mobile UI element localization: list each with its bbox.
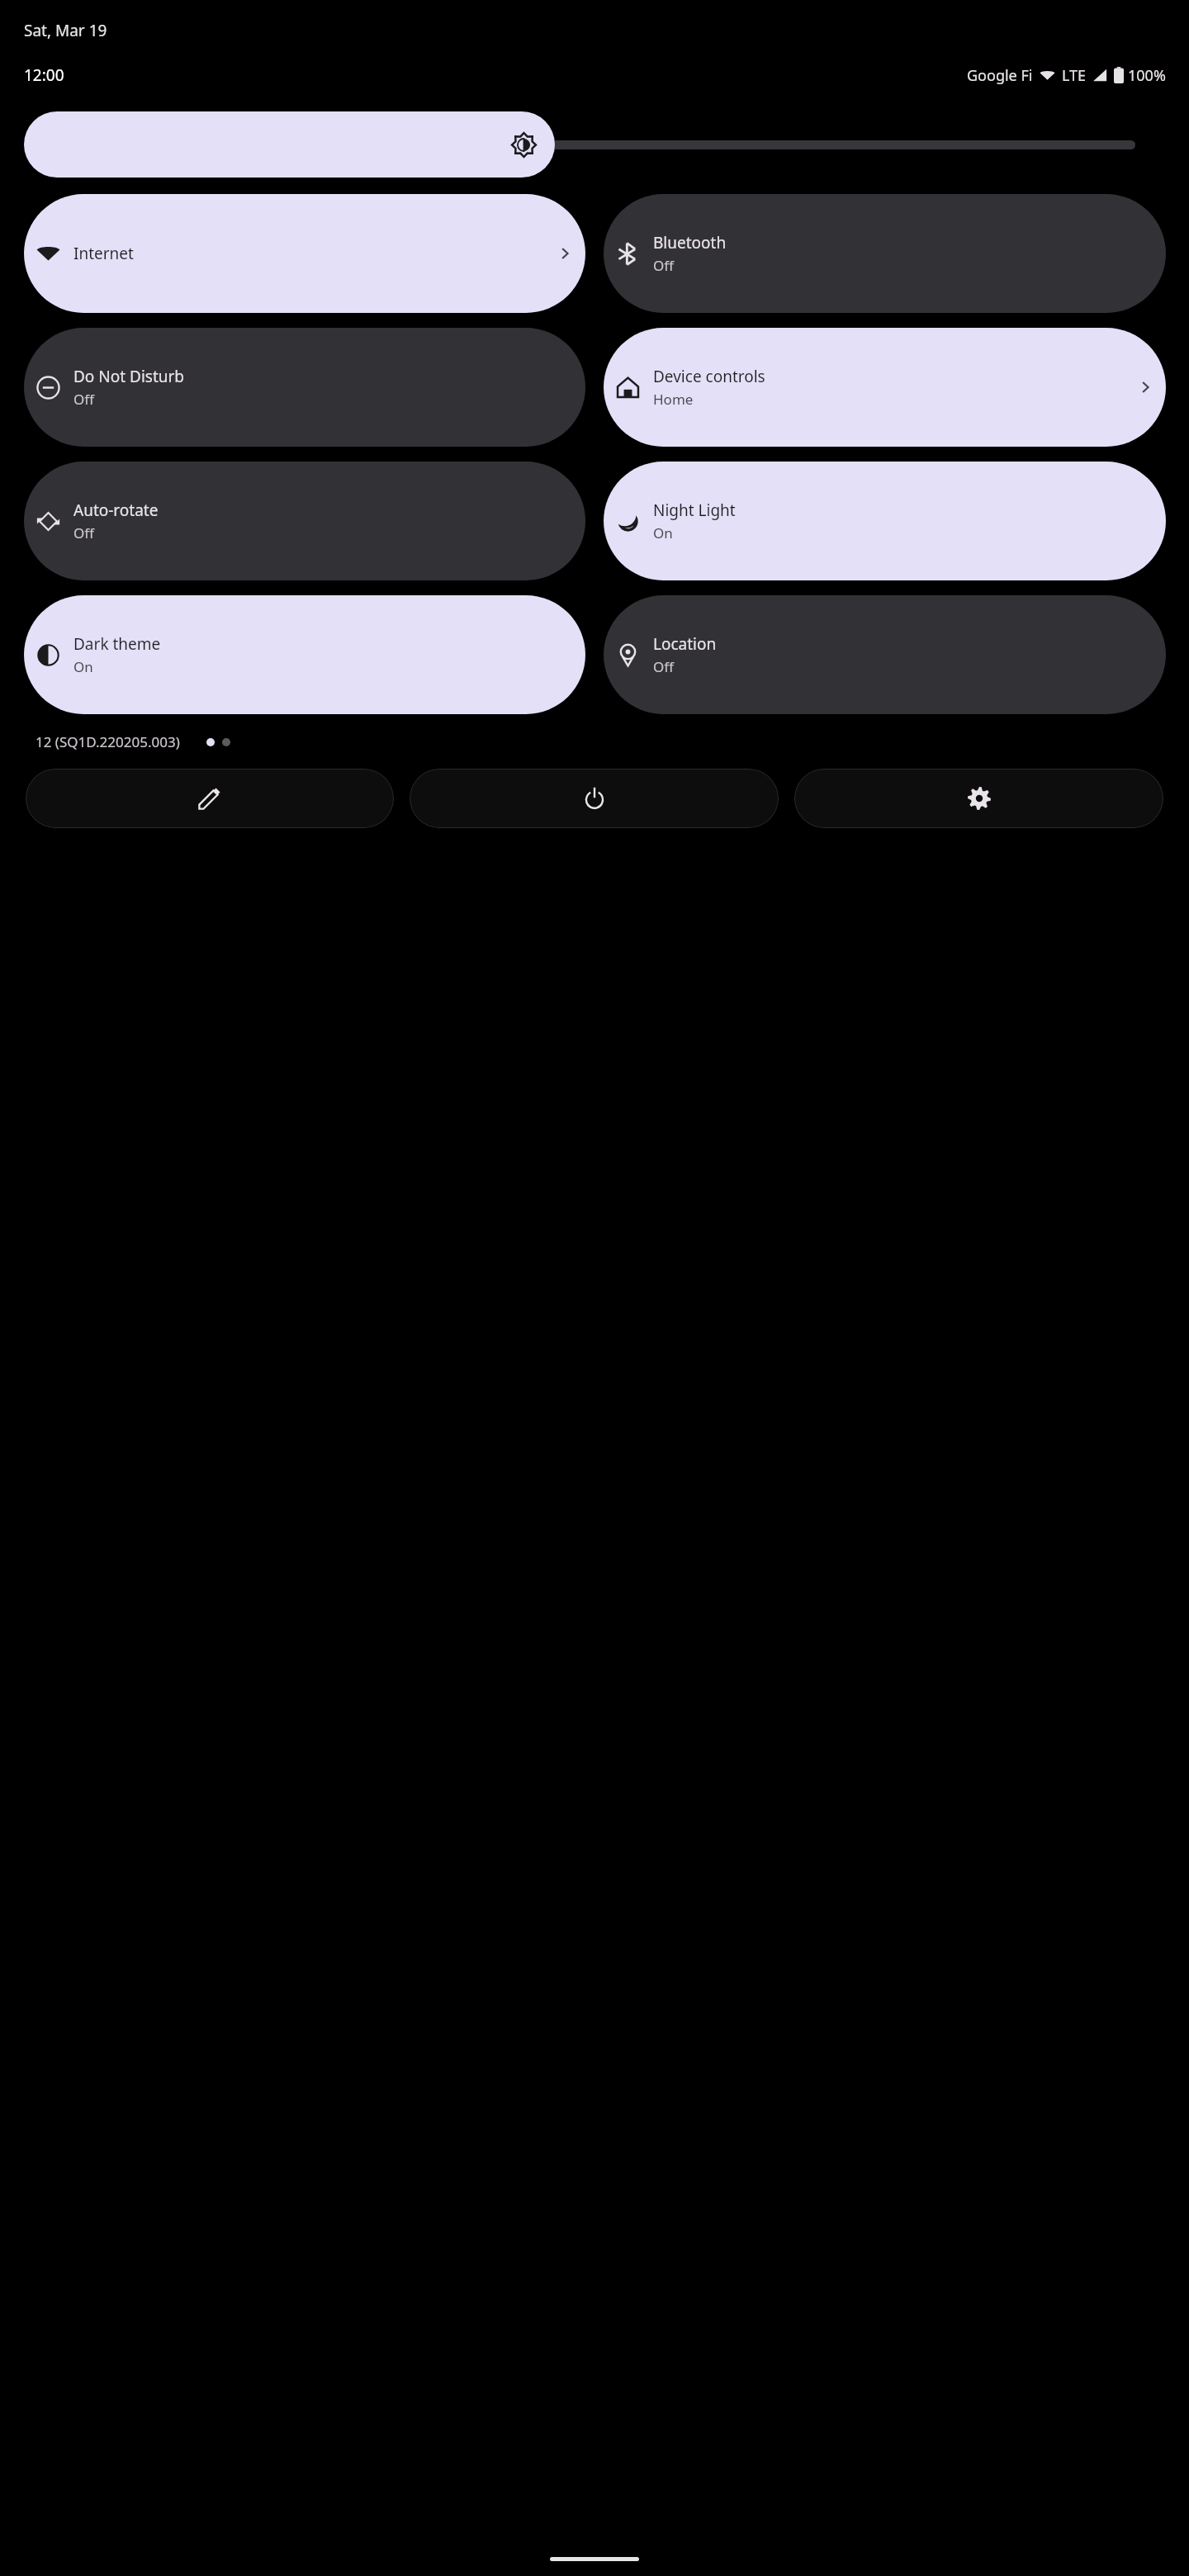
button[interactable]: Device controls (604, 328, 1166, 447)
button[interactable]: Internet (24, 194, 585, 313)
button[interactable]: Settings (794, 769, 1163, 828)
staticText: On (653, 523, 673, 542)
staticText: Google Fi (967, 65, 1033, 86)
staticText: Location (653, 633, 717, 655)
staticText: 12 (SQ1D.220205.003) (36, 732, 180, 751)
staticText: Device controls (653, 366, 765, 387)
button[interactable]: Bluetooth (604, 194, 1166, 313)
staticText: Auto-rotate (73, 500, 159, 521)
button[interactable]: Dark theme (24, 595, 585, 714)
staticText: Do Not Disturb (73, 366, 185, 387)
staticText: Home (653, 390, 694, 409)
staticText: Bluetooth (653, 232, 727, 253)
staticText: On (73, 657, 93, 676)
button[interactable]: Edit tiles (26, 769, 394, 828)
staticText: Sat, Mar 19 (24, 20, 107, 41)
staticText: LTE (1062, 65, 1087, 86)
staticText: Internet (73, 243, 134, 264)
button[interactable]: Brightness (24, 111, 1135, 178)
staticText: Off (73, 390, 94, 409)
staticText: Dark theme (73, 633, 161, 655)
button[interactable]: Night Light (604, 462, 1166, 580)
staticText: 100% (1128, 65, 1166, 86)
staticText: Off (73, 523, 94, 542)
button[interactable]: Auto-rotate (24, 462, 585, 580)
staticText: Off (653, 657, 674, 676)
button[interactable]: Do Not Disturb (24, 328, 585, 447)
button[interactable]: Location (604, 595, 1166, 714)
button[interactable]: Power (410, 769, 779, 828)
staticText: Off (653, 256, 674, 275)
staticText: Night Light (653, 500, 736, 521)
staticText: 12:00 (24, 64, 64, 86)
